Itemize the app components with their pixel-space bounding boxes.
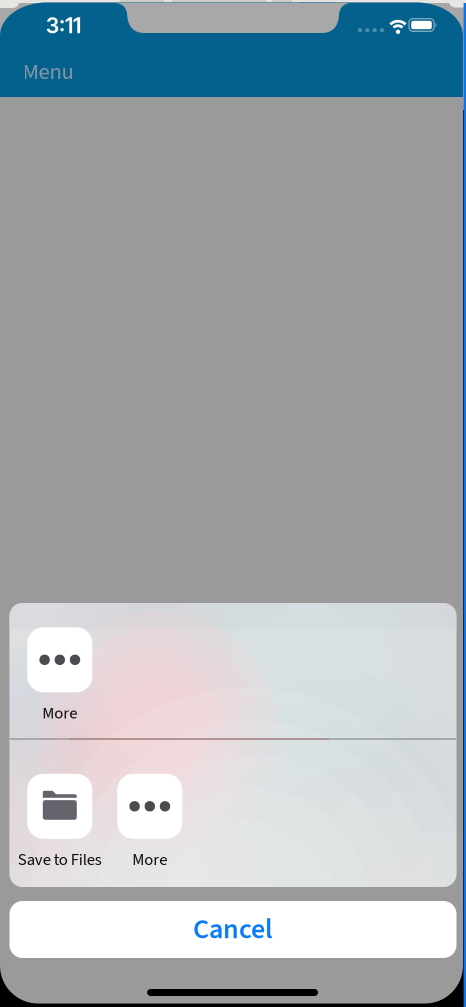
staticText: More [132, 848, 167, 872]
button[interactable]: More [102, 774, 198, 874]
staticText: More [42, 701, 77, 725]
staticText: Save to Files [18, 848, 102, 872]
staticText: Cancel [193, 910, 273, 949]
staticText: Menu [22, 56, 73, 88]
button[interactable]: Save to Files [12, 774, 108, 874]
staticText: 3:11 [46, 12, 81, 38]
button[interactable]: Cancel [9, 901, 456, 958]
button[interactable]: More [12, 627, 108, 727]
